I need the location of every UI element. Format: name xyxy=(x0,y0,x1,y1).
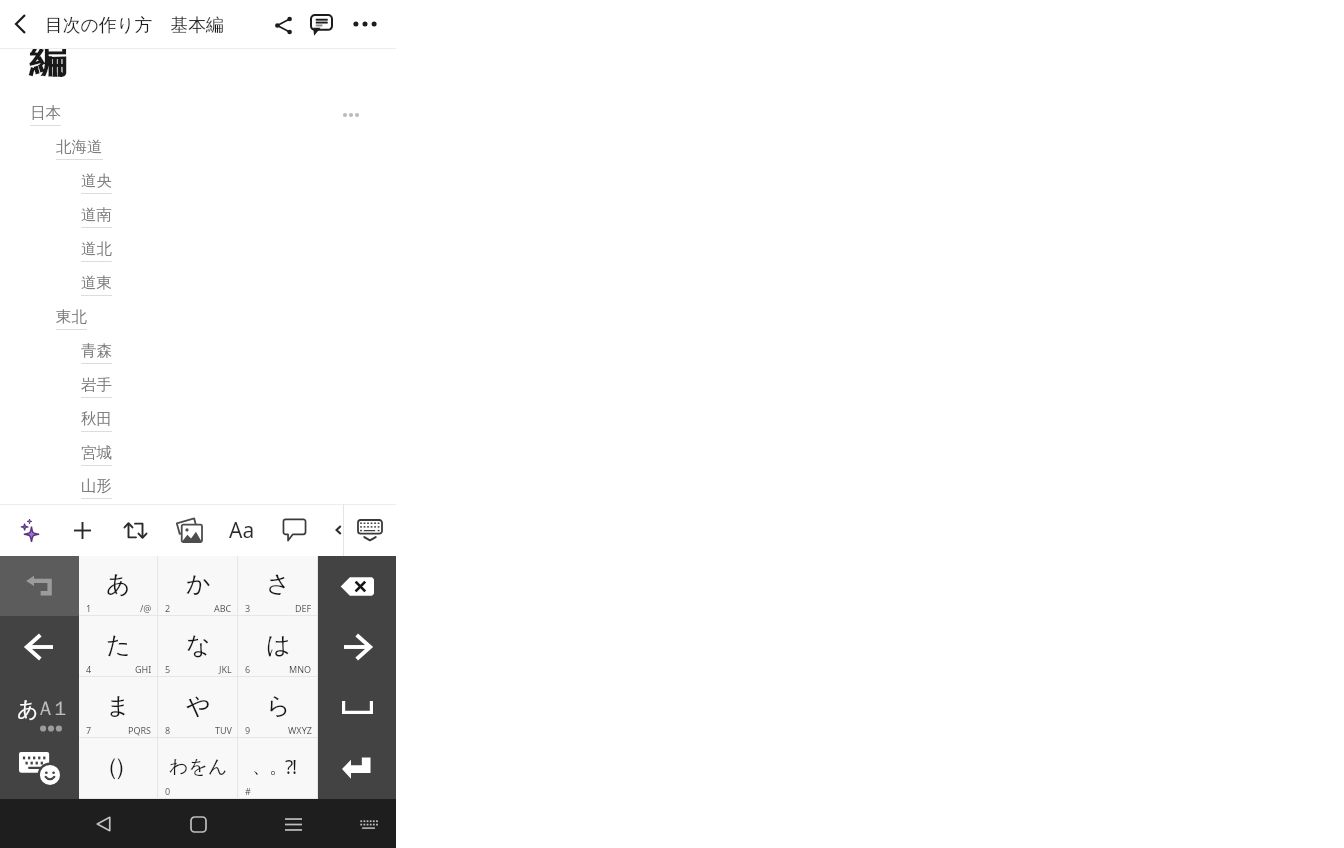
staticText: JKL xyxy=(219,663,232,675)
button[interactable]: Back xyxy=(0,0,45,48)
button[interactable]: な xyxy=(158,616,238,677)
button[interactable]: Block options xyxy=(338,102,364,128)
staticText: # xyxy=(245,785,251,797)
staticText: WXYZ xyxy=(288,724,312,736)
button[interactable]: 道北 xyxy=(0,233,396,267)
staticText: 道南 xyxy=(81,205,112,225)
staticText: ら xyxy=(266,691,291,721)
button[interactable]: 道南 xyxy=(0,199,396,233)
staticText: か xyxy=(186,569,211,599)
staticText: は xyxy=(266,630,291,660)
staticText: DEF xyxy=(295,602,312,614)
staticText: 3 xyxy=(245,602,251,614)
staticText: Ａ１ xyxy=(38,696,68,721)
button[interactable]: 日本 xyxy=(0,98,396,131)
staticText: 道北 xyxy=(81,239,112,259)
button[interactable]: 青森 xyxy=(0,335,396,369)
staticText: 岩手 xyxy=(81,375,112,395)
staticText: 北海道 xyxy=(56,137,103,157)
button[interactable]: わをん xyxy=(158,738,238,799)
staticText: 青森 xyxy=(81,341,112,361)
staticText: 2 xyxy=(165,602,171,614)
staticText: 9 xyxy=(245,724,251,736)
staticText: 。 xyxy=(269,755,288,779)
button[interactable]: Share xyxy=(259,0,308,48)
staticText: 8 xyxy=(165,724,171,736)
button[interactable]: 北海道 xyxy=(0,131,396,165)
button[interactable]: Comments xyxy=(308,0,334,48)
button[interactable]: 、 xyxy=(238,738,318,799)
staticText: 宮城 xyxy=(81,443,112,463)
button[interactable]: Undo or redo xyxy=(109,504,162,556)
staticText: 東北 xyxy=(56,307,87,327)
staticText: MNO xyxy=(289,663,312,675)
staticText: わをん xyxy=(169,755,228,779)
button[interactable]: は xyxy=(238,616,318,677)
button[interactable]: ま xyxy=(79,677,158,738)
staticText: /@ xyxy=(140,602,152,614)
button[interactable]: Insert image xyxy=(162,504,215,556)
staticText: ABC xyxy=(214,602,232,614)
button[interactable]: 岩手 xyxy=(0,369,396,403)
staticText: さ xyxy=(266,569,291,599)
button[interactable]: Undo xyxy=(0,556,79,616)
button[interactable]: 秋田 xyxy=(0,403,396,437)
staticText: た xyxy=(106,630,131,660)
button[interactable]: 道東 xyxy=(0,267,396,301)
staticText: ま xyxy=(106,691,131,721)
staticText: （ xyxy=(95,752,119,782)
staticText: あ xyxy=(106,569,131,599)
button[interactable]: や xyxy=(158,677,238,738)
staticText: 山形 xyxy=(81,476,112,496)
staticText: 1 xyxy=(86,602,92,614)
button[interactable]: Hide keyboard xyxy=(344,504,396,556)
staticText: 目次の作り方 基本編 xyxy=(45,12,224,36)
button[interactable]: Cursor right xyxy=(318,616,396,677)
button[interactable]: Insert xyxy=(56,504,109,556)
button[interactable]: （ xyxy=(79,738,158,799)
button[interactable]: Enter xyxy=(318,738,396,799)
button[interactable]: Add comment xyxy=(268,504,321,556)
button[interactable]: ら xyxy=(238,677,318,738)
staticText: な xyxy=(186,630,211,660)
button[interactable]: あ xyxy=(79,556,158,616)
staticText: 0 xyxy=(165,785,171,797)
button[interactable]: More options xyxy=(334,0,396,48)
button[interactable]: 山形 xyxy=(0,471,396,504)
button[interactable]: Backspace xyxy=(318,556,396,616)
staticText: ? xyxy=(285,754,294,780)
staticText: 道央 xyxy=(81,171,112,191)
staticText: ! xyxy=(292,754,298,780)
staticText: あ xyxy=(17,696,39,722)
button[interactable]: か xyxy=(158,556,238,616)
staticText: 秋田 xyxy=(81,409,112,429)
button[interactable]: Emoji keyboard xyxy=(0,738,79,799)
button[interactable]: 宮城 xyxy=(0,437,396,471)
button[interactable]: さ xyxy=(238,556,318,616)
staticText: 6 xyxy=(245,663,251,675)
button[interactable]: た xyxy=(79,616,158,677)
staticText: PQRS xyxy=(128,724,152,736)
staticText: 7 xyxy=(86,724,92,736)
staticText: や xyxy=(186,691,211,721)
button[interactable]: Back xyxy=(80,800,128,848)
button[interactable]: Home xyxy=(174,800,222,848)
staticText: Aa xyxy=(229,516,255,545)
button[interactable]: Cursor left xyxy=(0,616,79,677)
button[interactable]: Collapse toolbar xyxy=(333,504,343,556)
button[interactable]: 東北 xyxy=(0,301,396,335)
button[interactable]: Change keyboard xyxy=(344,800,392,848)
staticText: 道東 xyxy=(81,273,112,293)
button[interactable]: AI assist xyxy=(4,504,56,556)
staticText: 日本 xyxy=(30,103,61,123)
staticText: 編 xyxy=(29,49,67,83)
button[interactable]: 道央 xyxy=(0,165,396,199)
staticText: 4 xyxy=(86,663,92,675)
staticText: 、 xyxy=(252,755,271,779)
button[interactable]: Space xyxy=(318,677,396,738)
button[interactable]: Switch input mode xyxy=(0,677,79,738)
staticText: TUV xyxy=(215,724,232,736)
button[interactable]: Recent apps xyxy=(269,800,317,848)
button[interactable]: Text format xyxy=(215,504,268,556)
staticText: 5 xyxy=(165,663,171,675)
